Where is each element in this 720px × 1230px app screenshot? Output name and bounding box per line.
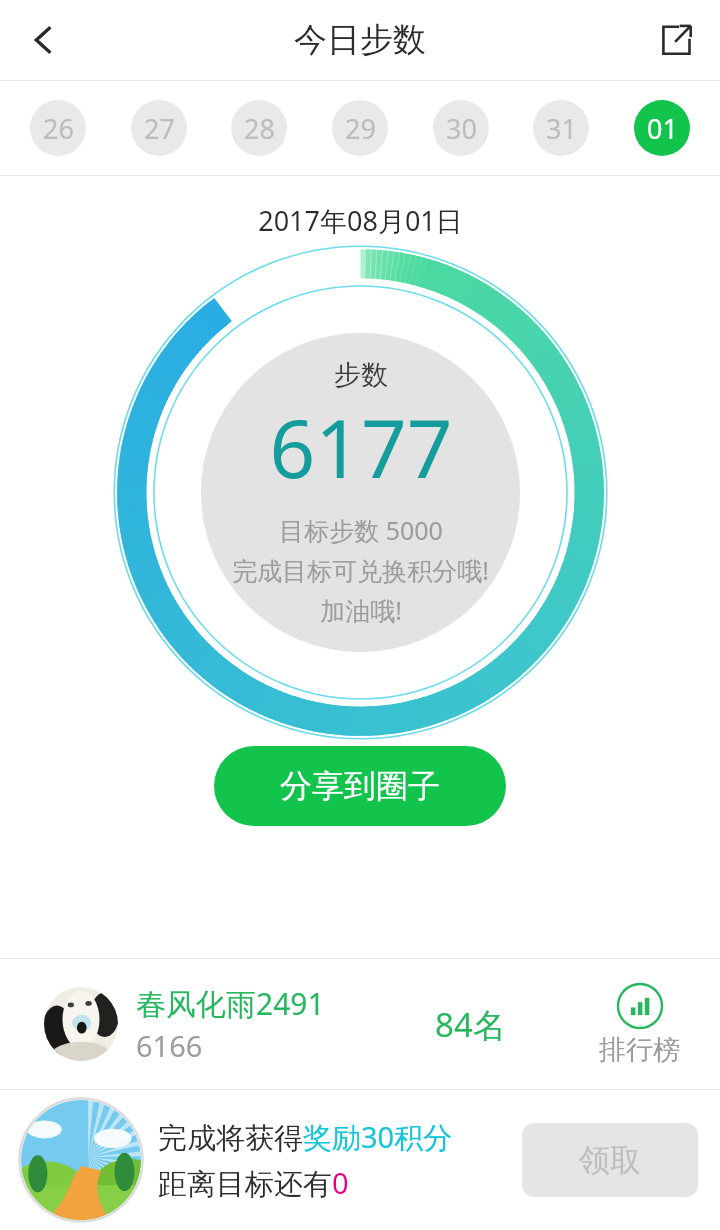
staticText: 31 [546,110,577,147]
staticText: 01 [647,110,678,147]
staticText: 领取 [579,1141,641,1180]
staticText: 30 [446,110,477,147]
staticText: 6177 [269,392,453,501]
staticText: 27 [144,110,175,147]
staticText: 84名 [435,1002,506,1047]
staticText: 完成将获得奖励30积分 [158,1117,453,1157]
staticText: 6166 [136,1026,203,1065]
staticText: 目标步数 5000 [279,513,443,547]
staticText: 加油哦! [320,593,402,627]
staticText: 2017年08月01日 [258,202,463,239]
staticText: 26 [43,110,74,147]
staticText: 步数 [334,358,388,392]
button[interactable]: 31 [533,100,589,156]
staticText: 今日步数 [294,19,426,61]
button[interactable]: Back [0,0,88,80]
button[interactable]: 29 [332,100,388,156]
button[interactable]: 领取 [522,1123,698,1197]
staticText: 28 [244,110,275,147]
staticText: 分享到圈子 [280,766,440,806]
staticText: 排行榜 [599,1033,680,1067]
staticText: 春风化雨2491 [136,983,325,1024]
button[interactable]: 01 [634,100,690,156]
button[interactable]: 30 [433,100,489,156]
button[interactable]: 27 [131,100,187,156]
button[interactable]: 分享到圈子 [214,746,506,826]
button[interactable]: 排行榜 [599,982,680,1067]
button[interactable]: 28 [231,100,287,156]
staticText: 距离目标还有0 [158,1163,349,1203]
button[interactable]: 26 [30,100,86,156]
staticText: 29 [345,110,376,147]
staticText: 完成目标可兑换积分哦! [232,553,489,587]
button[interactable]: 春风化雨2491 [0,959,720,1089]
button[interactable]: Share [632,0,720,80]
